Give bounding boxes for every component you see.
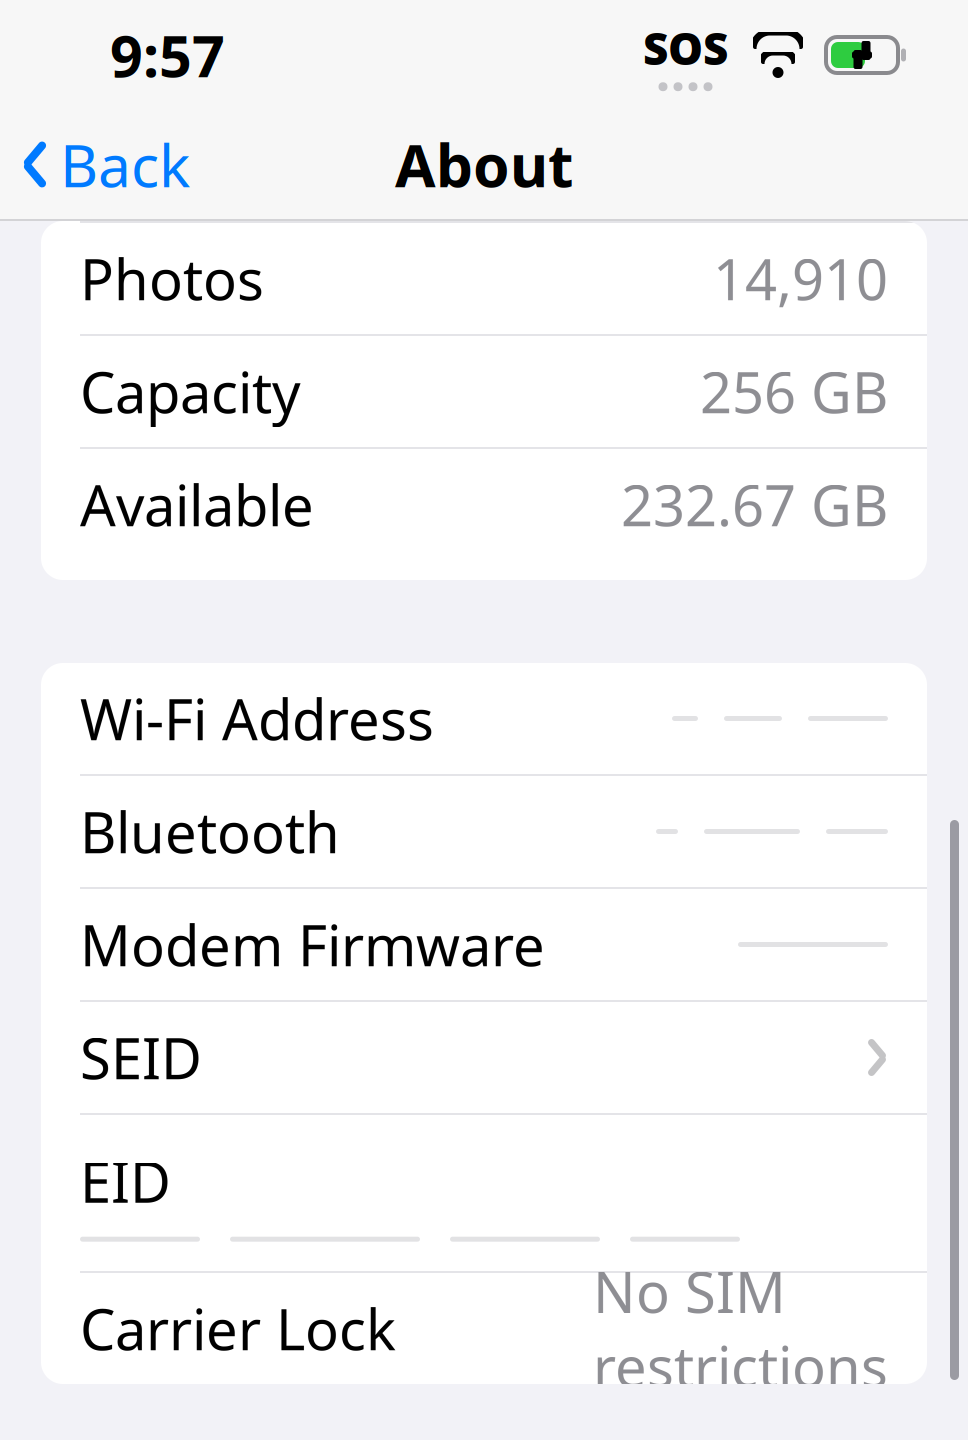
button[interactable]: Wi-Fi Address — [41, 663, 927, 774]
staticText: 9:57 — [110, 17, 225, 93]
staticText: Available — [80, 467, 314, 542]
staticText: 232.67 GB — [621, 467, 888, 542]
button[interactable]: Modem Firmware — [41, 889, 927, 1000]
button[interactable]: Photos — [41, 223, 927, 334]
staticText: Bluetooth — [80, 794, 340, 869]
button[interactable]: Capacity — [41, 336, 927, 447]
staticText: Wi-Fi Address — [80, 681, 434, 756]
button[interactable]: Back — [0, 111, 212, 217]
staticText: Carrier Lock — [80, 1291, 396, 1366]
staticText: SEID — [80, 1020, 202, 1095]
staticText: About — [395, 125, 573, 203]
button[interactable]: Carrier Lock — [41, 1273, 927, 1384]
button[interactable]: Available — [41, 449, 927, 560]
button[interactable]: SEID — [41, 1002, 927, 1113]
staticText: No SIM restrictions — [593, 1254, 888, 1403]
staticText: SOS — [643, 19, 728, 77]
staticText: Back — [60, 125, 190, 203]
staticText: EID — [80, 1144, 171, 1218]
staticText: 256 GB — [700, 354, 888, 429]
staticText: Capacity — [80, 354, 301, 429]
button[interactable]: Bluetooth — [41, 776, 927, 887]
staticText: Modem Firmware — [80, 907, 545, 982]
staticText: 14,910 — [713, 241, 888, 316]
staticText: Photos — [80, 241, 264, 316]
button[interactable]: EID — [41, 1115, 927, 1271]
